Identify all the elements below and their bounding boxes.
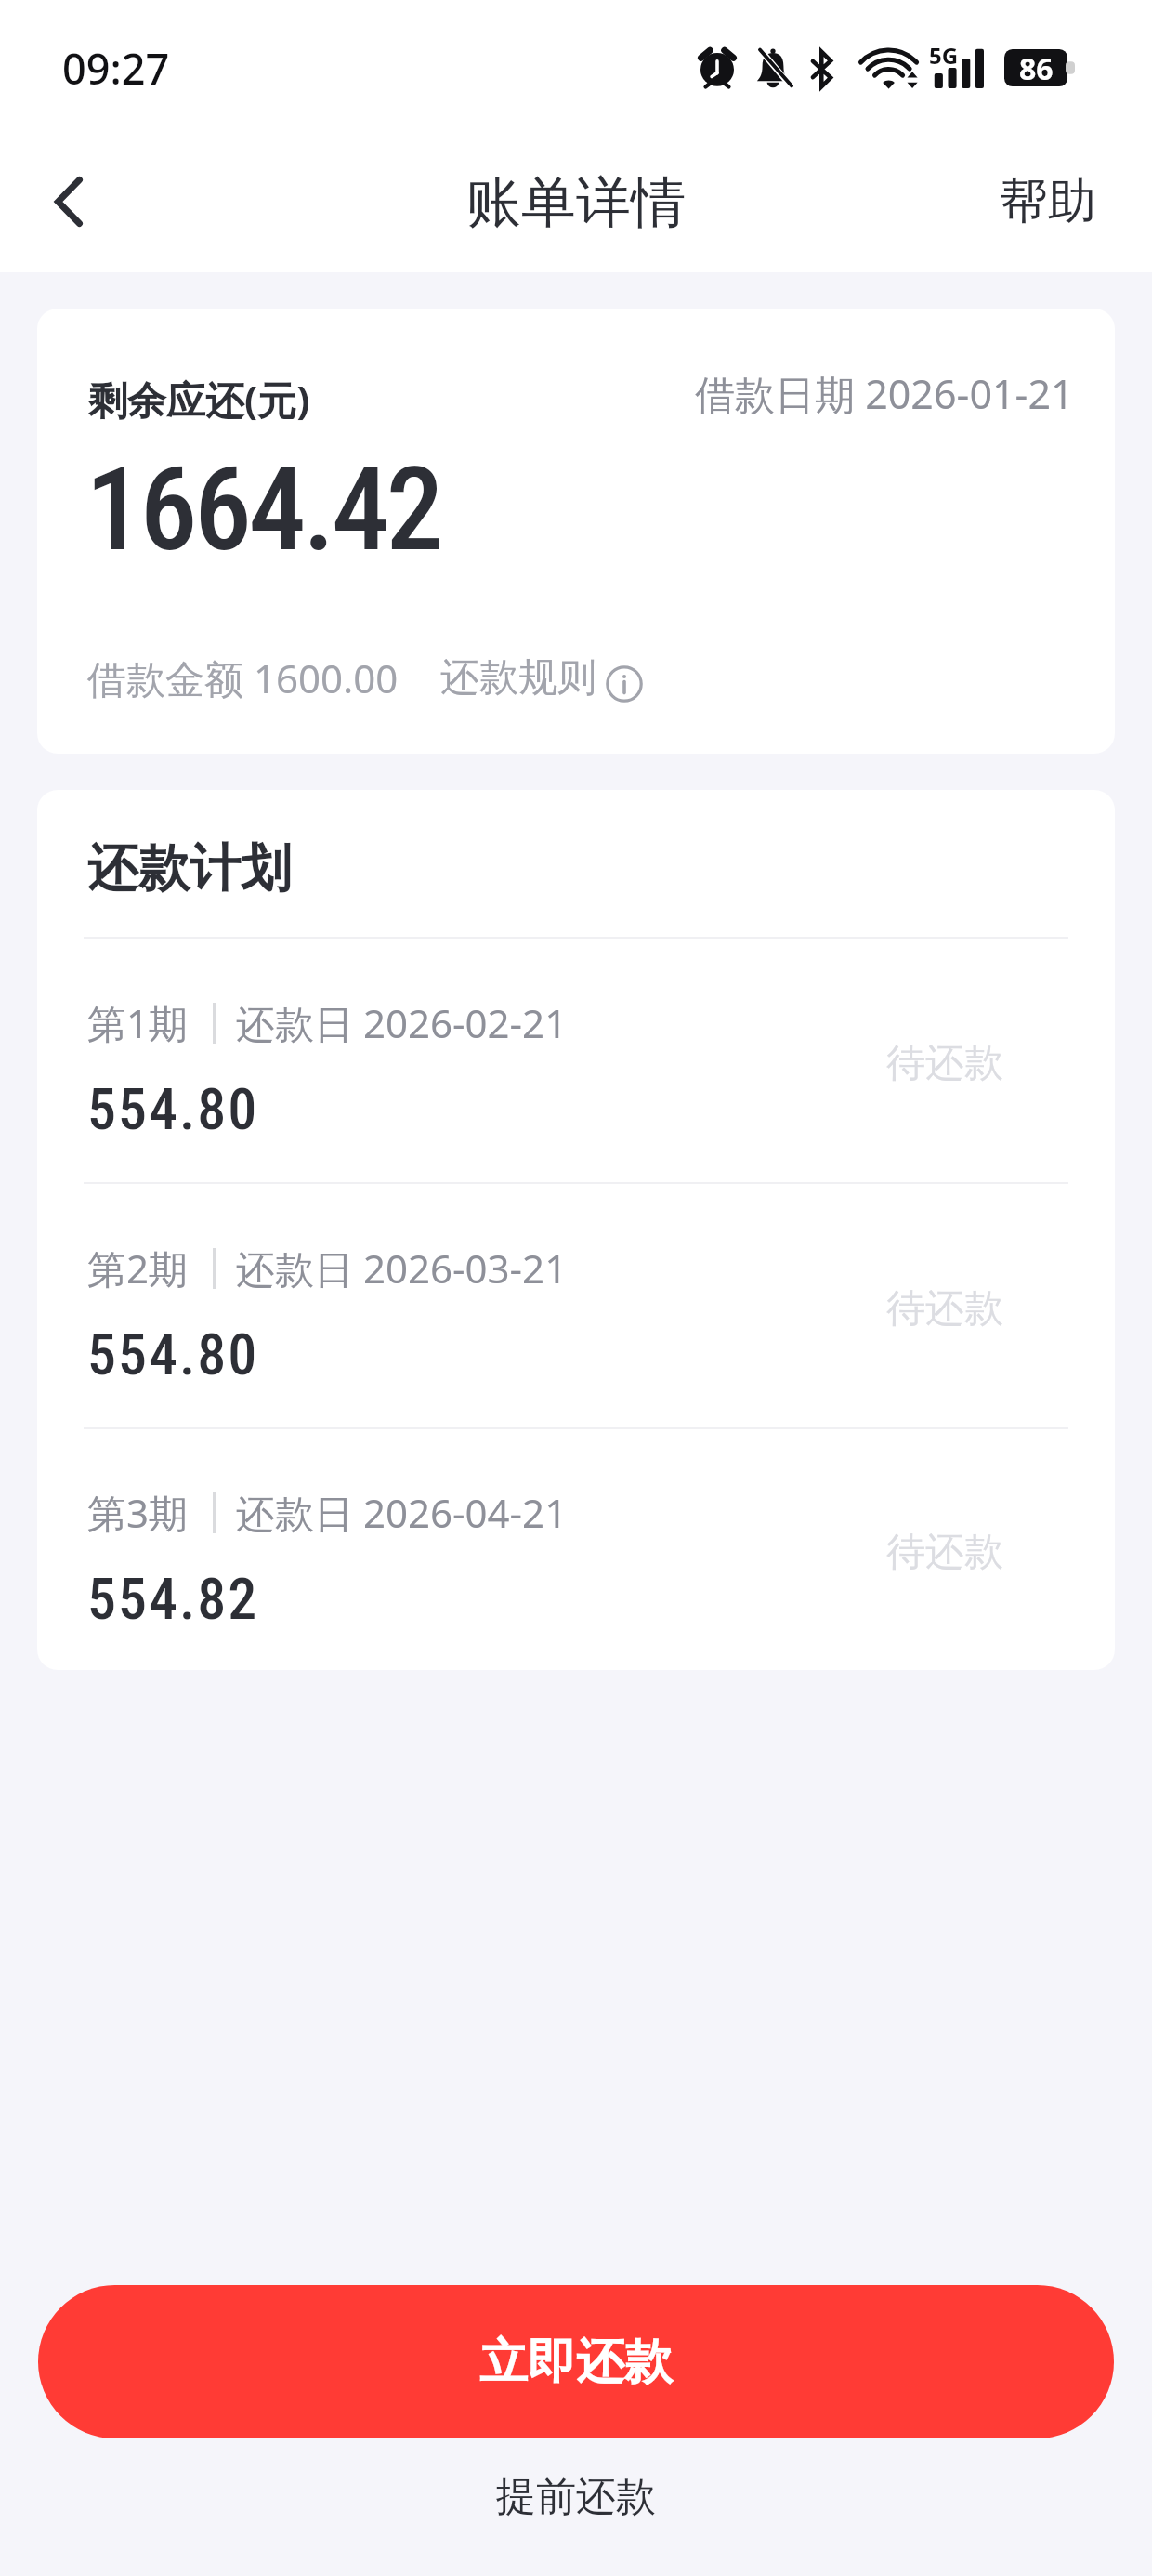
staticText: 剩余应还(元): [88, 373, 310, 426]
staticText: 账单详情: [466, 168, 686, 237]
staticText: 借款金额 1600.00: [87, 651, 399, 704]
staticText: 5G: [929, 40, 959, 71]
button[interactable]: 第2期: [37, 1184, 1115, 1427]
staticText: 待还款: [886, 1039, 1003, 1088]
staticText: 还款规则: [440, 653, 596, 703]
staticText: 还款日 2026-02-21: [236, 996, 568, 1049]
staticText: 554.80: [87, 1075, 259, 1143]
button[interactable]: 帮助: [1000, 111, 1096, 272]
button[interactable]: Back: [0, 111, 134, 272]
staticText: 09:27: [62, 40, 170, 97]
staticText: 86: [1019, 48, 1054, 85]
staticText: 待还款: [886, 1528, 1003, 1577]
staticText: 第3期: [87, 1486, 189, 1539]
button[interactable]: 第3期: [37, 1429, 1115, 1670]
staticText: 待还款: [886, 1284, 1003, 1334]
button[interactable]: 还款规则: [440, 653, 643, 703]
staticText: 第1期: [87, 996, 189, 1049]
button[interactable]: 立即还款: [38, 2285, 1114, 2438]
staticText: 还款日 2026-04-21: [236, 1486, 568, 1539]
staticText: 还款计划: [87, 836, 292, 900]
staticText: 第2期: [87, 1242, 189, 1295]
staticText: 借款日期 2026-01-21: [695, 366, 1074, 421]
staticText: 1664.42: [85, 442, 441, 577]
staticText: 提前还款: [496, 2472, 656, 2522]
staticText: 立即还款: [479, 2332, 673, 2393]
button[interactable]: 第1期: [37, 939, 1115, 1182]
staticText: 554.82: [87, 1565, 259, 1633]
staticText: 554.80: [87, 1321, 259, 1388]
button[interactable]: 提前还款: [496, 2472, 656, 2522]
staticText: 帮助: [1000, 171, 1096, 232]
staticText: 还款日 2026-03-21: [236, 1242, 568, 1295]
